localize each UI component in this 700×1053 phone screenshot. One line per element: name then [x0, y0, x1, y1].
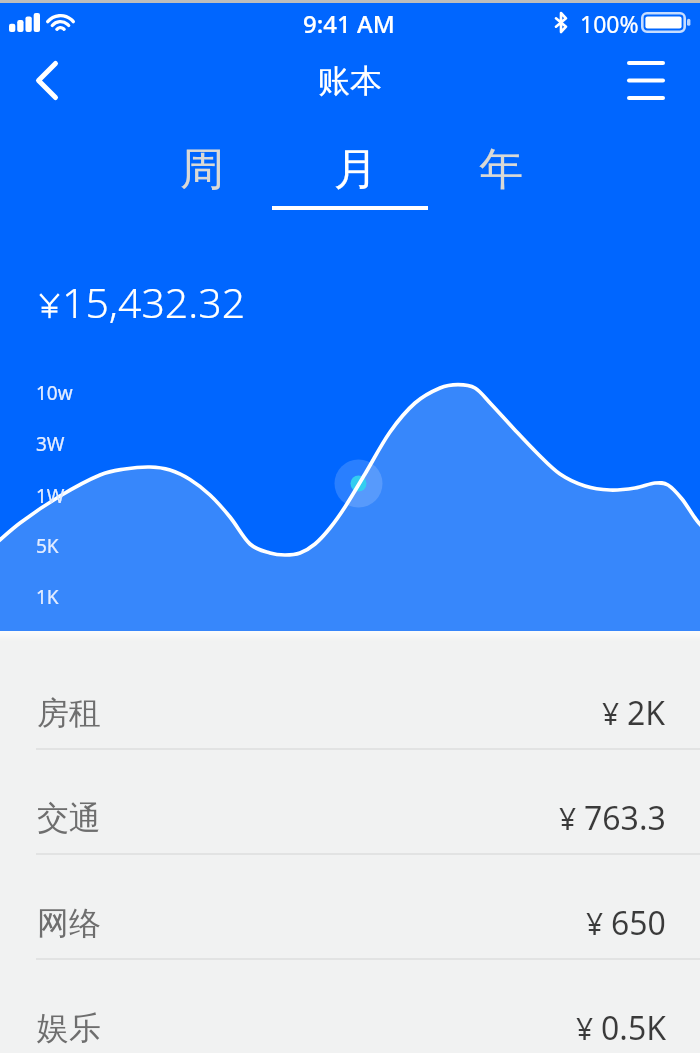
staticText: 763.3 — [584, 796, 666, 840]
staticText: ¥ — [602, 693, 620, 734]
staticText: 账本 — [318, 61, 382, 101]
staticText: 650 — [611, 901, 666, 945]
staticText: ¥ — [576, 1008, 594, 1049]
staticText: 交通 — [37, 798, 101, 838]
staticText: ¥ — [586, 903, 604, 944]
button[interactable]: 娱乐 — [0, 975, 700, 1053]
staticText: 0.5K — [601, 1006, 666, 1050]
button[interactable]: Menu — [617, 51, 675, 109]
button[interactable]: 交通 — [0, 765, 700, 870]
staticText: 10w — [36, 380, 73, 406]
staticText: 9:41 AM — [303, 7, 395, 40]
staticText: 100% — [580, 8, 639, 39]
button[interactable]: 网络 — [0, 870, 700, 975]
staticText: 房租 — [37, 693, 101, 733]
button[interactable]: 年 — [427, 130, 575, 220]
staticText: 15,432.32 — [62, 274, 246, 330]
button[interactable]: 房租 — [0, 660, 700, 765]
button[interactable]: Back — [18, 51, 76, 109]
staticText: ¥ — [559, 798, 577, 839]
staticText: 3W — [36, 431, 65, 457]
staticText: 月 — [334, 142, 378, 197]
staticText: 5K — [36, 533, 59, 559]
button[interactable]: 月 — [282, 130, 430, 220]
staticText: 年 — [479, 142, 523, 197]
button[interactable]: 周 — [128, 130, 276, 220]
staticText: 1W — [36, 483, 65, 509]
staticText: 1K — [36, 584, 59, 610]
staticText: 网络 — [37, 903, 101, 943]
staticText: 周 — [180, 142, 224, 197]
staticText: 娱乐 — [37, 1008, 101, 1048]
staticText: 2K — [627, 691, 666, 735]
